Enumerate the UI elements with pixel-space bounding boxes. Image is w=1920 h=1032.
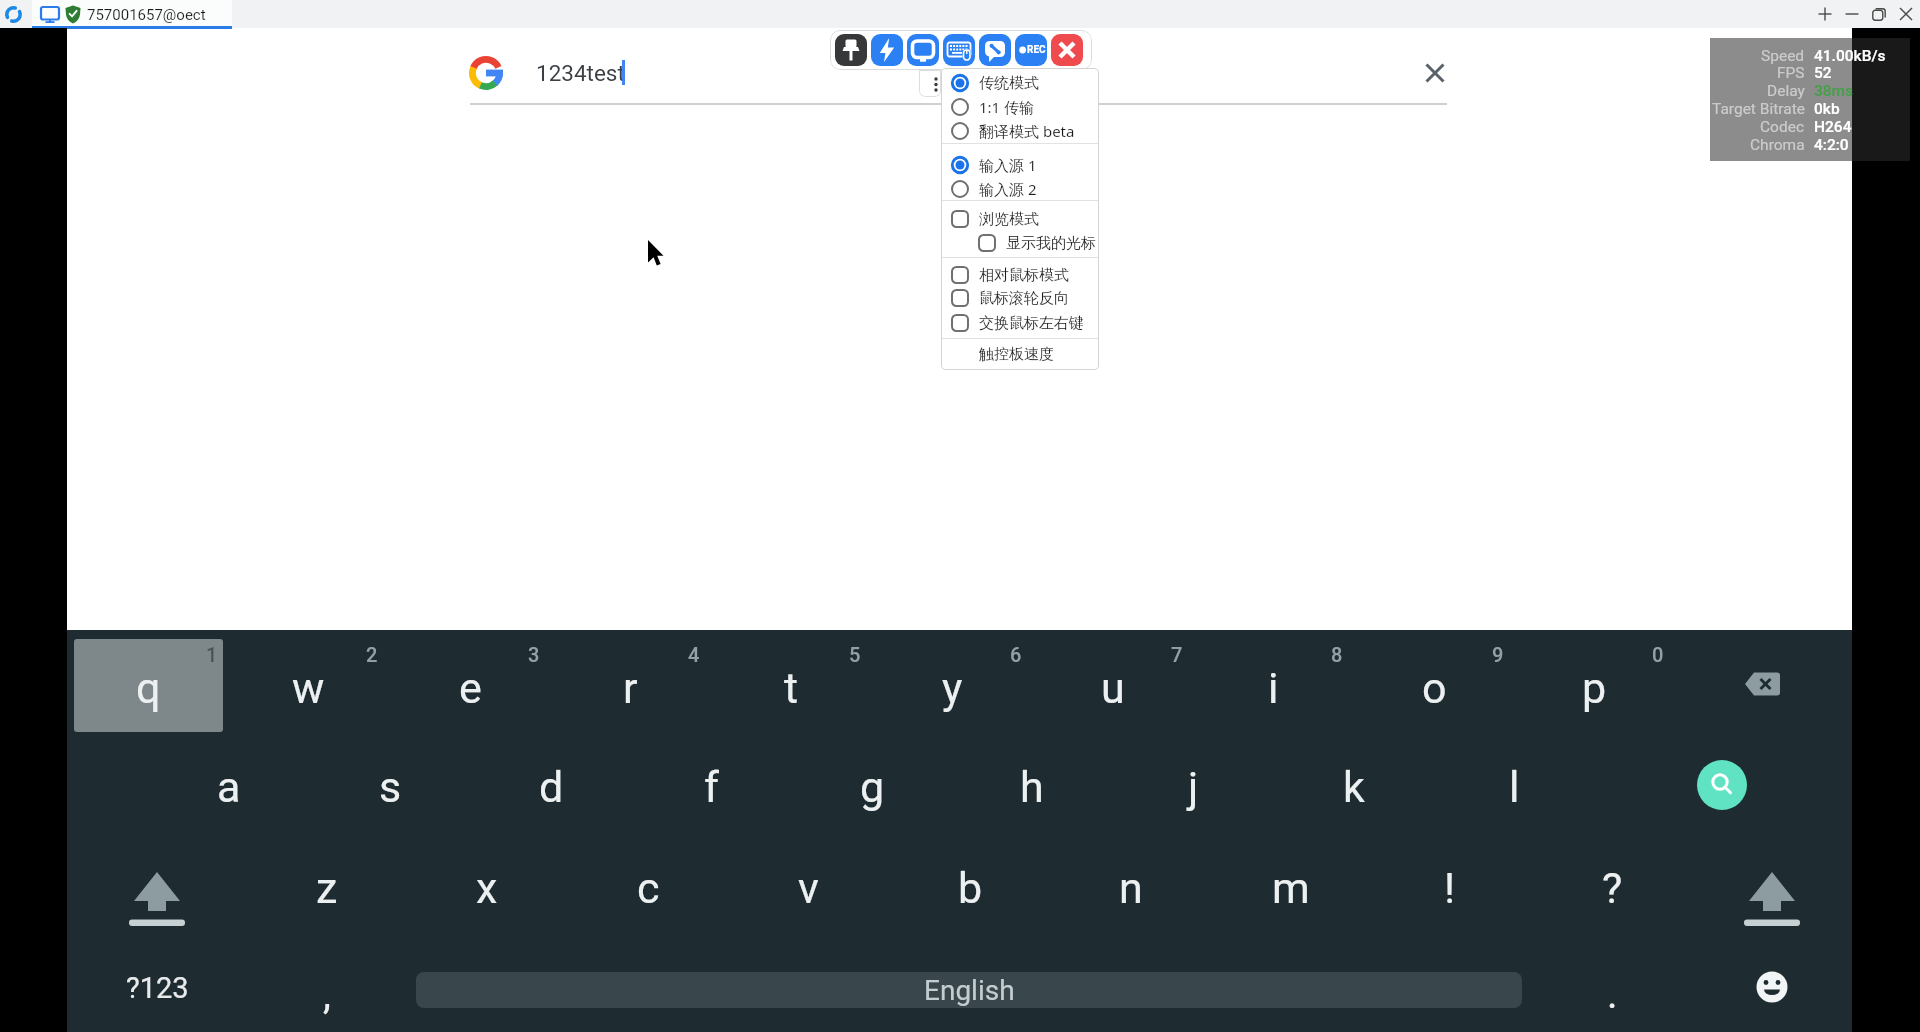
button[interactable] — [1707, 858, 1837, 943]
button[interactable]: t — [711, 638, 871, 738]
button[interactable]: y — [872, 638, 1032, 738]
staticText: y — [942, 663, 963, 713]
button[interactable] — [941, 263, 1099, 287]
button[interactable]: o — [1354, 638, 1514, 738]
button[interactable]: g — [792, 737, 952, 837]
staticText: m — [1272, 863, 1310, 913]
button[interactable]: ? — [1532, 838, 1692, 938]
button[interactable]: e — [390, 638, 550, 738]
button[interactable] — [979, 34, 1011, 66]
staticText: p — [1582, 663, 1607, 713]
staticText: r — [623, 663, 638, 713]
button[interactable]: m — [1211, 838, 1371, 938]
staticText: Delay — [1767, 82, 1805, 100]
staticText: 2 — [366, 643, 378, 666]
button[interactable] — [941, 153, 1099, 177]
staticText: c — [637, 863, 660, 913]
button[interactable]: p — [1514, 638, 1674, 738]
button[interactable] — [1015, 34, 1047, 66]
button[interactable]: c — [568, 838, 728, 938]
button[interactable]: s — [310, 737, 470, 837]
button[interactable] — [1838, 0, 1866, 28]
staticText: i — [1268, 663, 1279, 713]
button[interactable]: r — [550, 638, 710, 738]
button[interactable] — [32, 0, 232, 26]
button[interactable] — [82, 943, 232, 1032]
button[interactable]: a — [149, 737, 309, 837]
button[interactable]: b — [890, 838, 1050, 938]
staticText: g — [860, 762, 885, 812]
button[interactable] — [941, 231, 1099, 255]
staticText: e — [459, 663, 482, 713]
staticText: 3 — [528, 643, 540, 666]
staticText: FPS — [1777, 64, 1805, 82]
button[interactable] — [943, 34, 975, 66]
button[interactable] — [941, 71, 1099, 95]
button[interactable] — [1865, 0, 1893, 28]
staticText: . — [1607, 971, 1618, 1018]
staticText: d — [539, 762, 564, 812]
button[interactable] — [941, 311, 1099, 335]
staticText: 输入源 2 — [979, 179, 1037, 199]
button[interactable] — [1422, 60, 1448, 86]
staticText: n — [1119, 863, 1143, 913]
button[interactable] — [941, 342, 1099, 368]
button[interactable] — [941, 177, 1099, 201]
button[interactable] — [1697, 760, 1747, 810]
button[interactable] — [1743, 666, 1783, 702]
staticText: 5 — [849, 643, 861, 666]
staticText: 757001657@oect — [87, 6, 206, 24]
staticText: 交换鼠标左右键 — [979, 314, 1084, 333]
button[interactable]: h — [952, 737, 1112, 837]
button[interactable]: n — [1051, 838, 1211, 938]
staticText: ?123 — [126, 971, 189, 1005]
staticText: 翻译模式 beta — [979, 121, 1075, 141]
button[interactable]: j — [1113, 737, 1273, 837]
button[interactable] — [907, 34, 939, 66]
staticText: k — [1343, 762, 1365, 812]
staticText: ? — [1602, 863, 1623, 913]
button[interactable] — [1811, 0, 1839, 28]
button[interactable]: u — [1033, 638, 1193, 738]
button[interactable]: v — [728, 838, 888, 938]
button[interactable]: d — [471, 737, 631, 837]
staticText: 输入源 1 — [979, 155, 1037, 175]
staticText: s — [379, 762, 402, 812]
button[interactable]: ! — [1370, 838, 1530, 938]
button[interactable] — [1752, 967, 1792, 1007]
staticText: 38ms — [1814, 82, 1854, 100]
button[interactable] — [92, 858, 222, 943]
button[interactable] — [941, 207, 1099, 231]
staticText: 显示我的光标 — [1006, 234, 1096, 253]
button[interactable] — [941, 95, 1099, 119]
staticText: 1:1 传输 — [979, 97, 1035, 117]
staticText: Target Bitrate — [1712, 100, 1805, 118]
button[interactable] — [1892, 0, 1920, 28]
button[interactable] — [941, 119, 1099, 143]
staticText: 触控板速度 — [979, 345, 1054, 364]
button[interactable]: f — [631, 737, 791, 837]
staticText: f — [704, 762, 719, 812]
button[interactable]: x — [407, 838, 567, 938]
staticText: 浏览模式 — [979, 210, 1039, 229]
button[interactable] — [1051, 34, 1083, 66]
staticText: b — [958, 863, 983, 913]
button[interactable]: w — [228, 638, 388, 738]
button[interactable]: i — [1193, 638, 1353, 738]
staticText: l — [1509, 762, 1520, 812]
staticText: 相对鼠标模式 — [979, 266, 1069, 285]
staticText: u — [1101, 663, 1125, 713]
staticText: REC — [1027, 44, 1046, 56]
button[interactable]: k — [1274, 737, 1434, 837]
button[interactable] — [941, 286, 1099, 310]
staticText: 6 — [1010, 643, 1022, 666]
button[interactable]: English — [416, 972, 1522, 1008]
button[interactable]: q — [68, 638, 228, 738]
staticText: 41.00kB/s — [1814, 47, 1886, 65]
button[interactable] — [835, 34, 867, 66]
button[interactable] — [871, 34, 903, 66]
button[interactable]: l — [1434, 737, 1594, 837]
button[interactable]: z — [247, 838, 407, 938]
staticText: x — [476, 863, 498, 913]
staticText: 4 — [688, 643, 700, 666]
